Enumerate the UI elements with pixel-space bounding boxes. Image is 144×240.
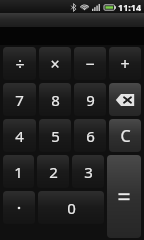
staticText: 8 [51, 90, 60, 110]
button[interactable]: × [39, 47, 71, 80]
staticText: 2 [49, 162, 58, 182]
button[interactable]: + [109, 47, 141, 80]
button[interactable]: 8 [39, 83, 71, 116]
button[interactable]: 9 [74, 83, 106, 116]
button[interactable]: C [109, 119, 141, 152]
button[interactable]: − [74, 47, 106, 80]
button[interactable]: 5 [39, 119, 71, 152]
staticText: 5 [51, 126, 60, 146]
button[interactable]: 7 [3, 83, 36, 116]
staticText: C [120, 125, 131, 147]
staticText: × [50, 53, 60, 75]
button[interactable]: 0 [38, 191, 104, 224]
button[interactable]: 3 [72, 155, 104, 188]
staticText: 4 [15, 126, 24, 146]
staticText: 11:14 [118, 1, 142, 13]
staticText: − [85, 53, 95, 75]
button[interactable]: ÷ [3, 47, 36, 80]
staticText: + [120, 53, 130, 75]
button[interactable]: Delete [109, 83, 141, 116]
button[interactable]: 6 [74, 119, 106, 152]
button[interactable]: 2 [37, 155, 69, 188]
staticText: 0 [67, 198, 76, 218]
staticText: 9 [86, 90, 95, 110]
button[interactable] [3, 191, 35, 224]
button[interactable]: 4 [3, 119, 36, 152]
staticText: 1 [14, 162, 23, 182]
staticText: 6 [86, 126, 95, 146]
button[interactable]: Equals [107, 155, 141, 238]
button[interactable]: 1 [3, 155, 34, 188]
staticText: ÷ [15, 53, 25, 75]
staticText: 7 [15, 90, 24, 110]
staticText: 3 [84, 162, 93, 182]
